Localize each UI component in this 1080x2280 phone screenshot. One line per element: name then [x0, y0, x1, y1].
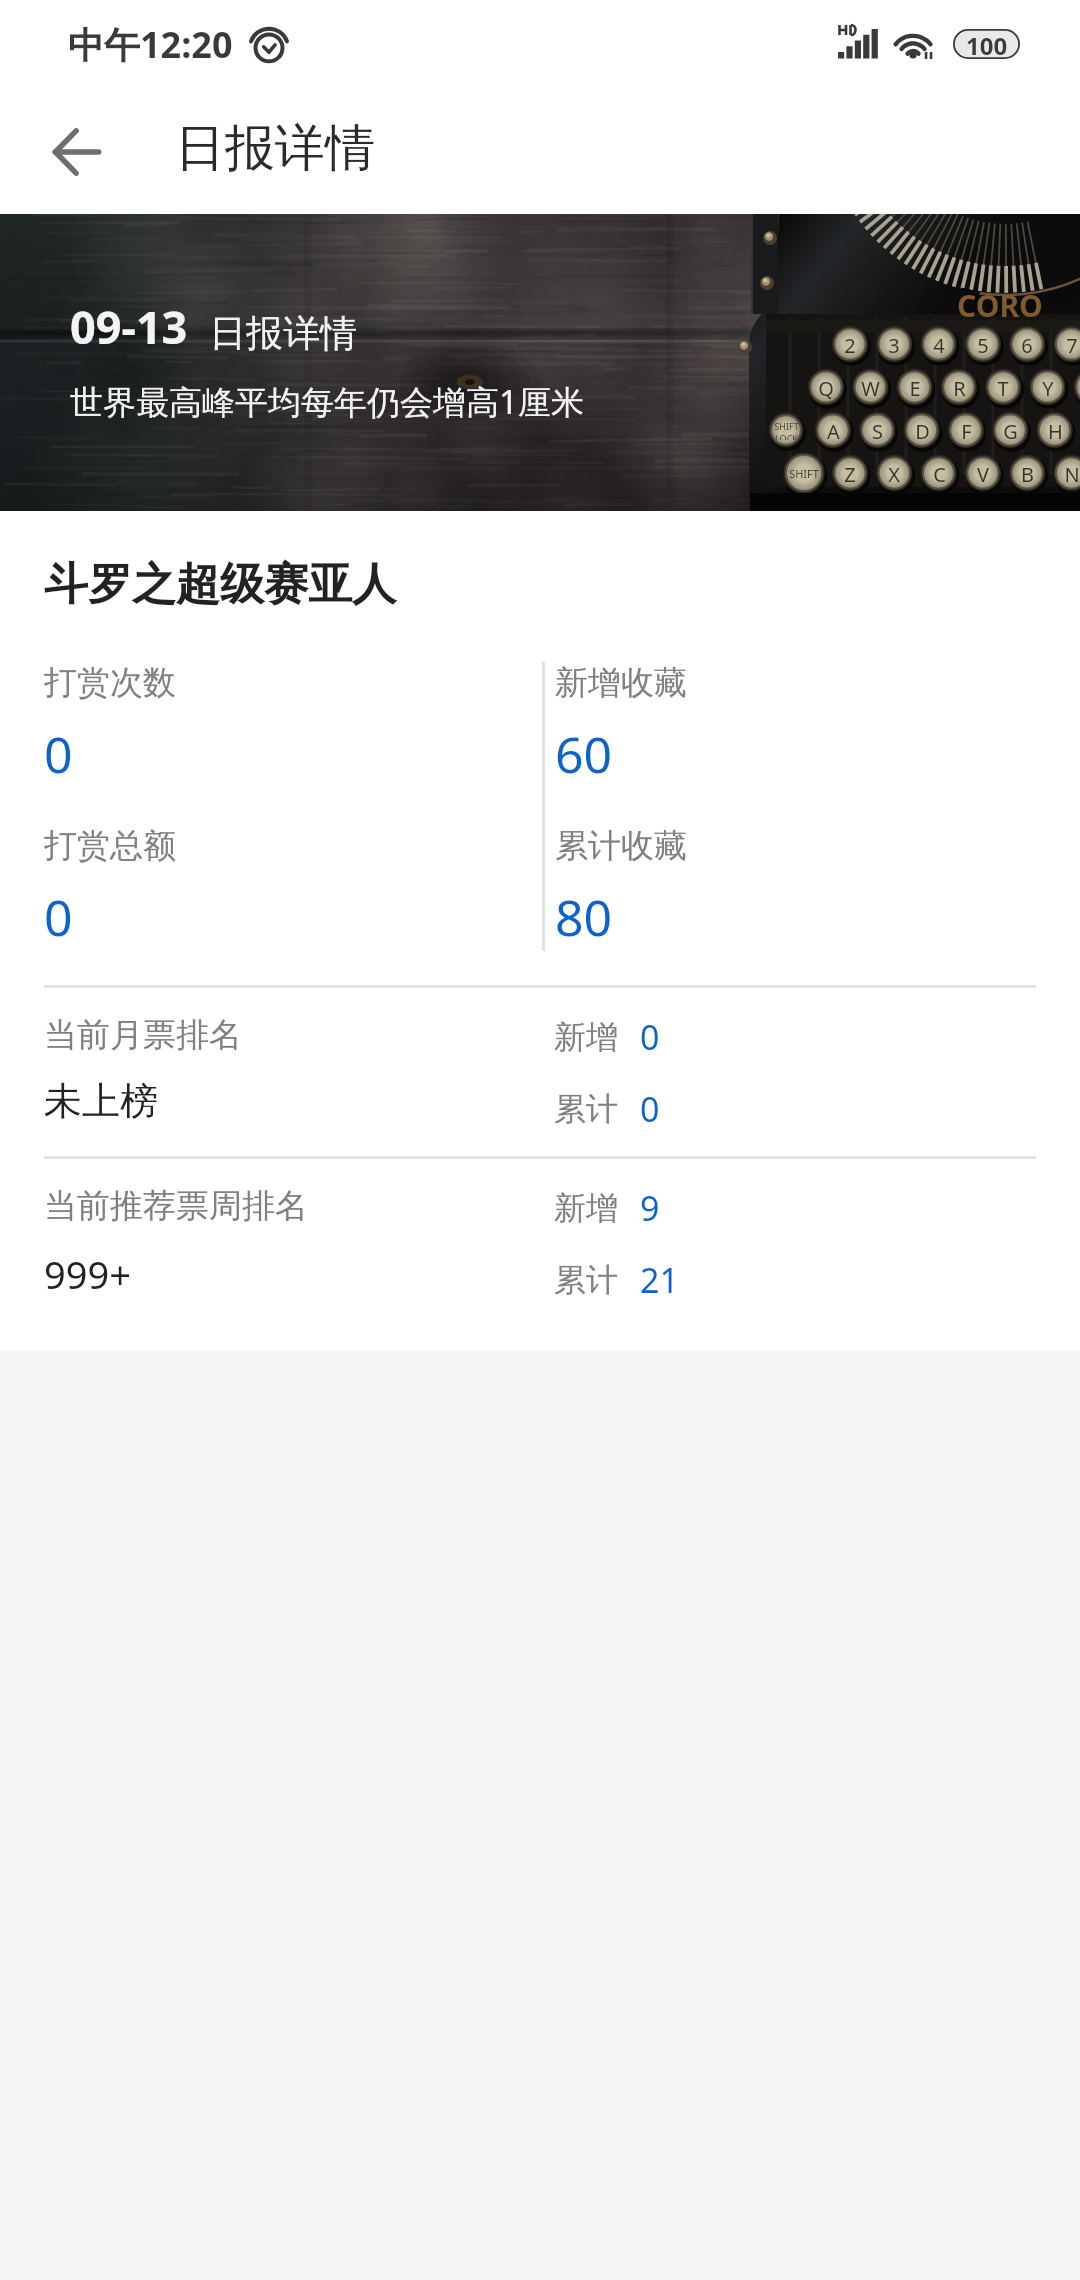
staticText: 3 [888, 332, 900, 356]
staticText: 0 [640, 1086, 660, 1132]
staticText: D [915, 418, 930, 442]
staticText: 6 [1021, 332, 1033, 356]
staticText: 5 [977, 332, 989, 356]
staticText: H [1048, 418, 1063, 442]
staticText: 日报详情 [209, 310, 357, 357]
staticText: 0 [640, 1014, 660, 1060]
staticText: W [861, 375, 880, 399]
button[interactable]: 当前推荐票周排名 [0, 1159, 1080, 1327]
staticText: V [977, 461, 989, 485]
staticText: CORO [957, 285, 1043, 326]
staticText: E [909, 375, 921, 399]
staticText: 未上榜 [44, 1077, 158, 1125]
staticText: 打赏次数 [44, 662, 176, 704]
staticText: N [1064, 461, 1080, 485]
staticText: 0 [44, 720, 73, 788]
staticText: SHIFT [789, 466, 819, 481]
staticText: 7 [1066, 332, 1078, 356]
staticText: 4 [933, 332, 945, 356]
staticText: X [888, 461, 900, 485]
staticText: 打赏总额 [44, 825, 176, 867]
button[interactable]: 返回 [34, 109, 120, 195]
staticText: 100 [966, 29, 1008, 59]
staticText: 中午12:20 [68, 20, 233, 69]
staticText: 80 [555, 883, 613, 951]
staticText: 2 [844, 332, 856, 356]
staticText: 999+ [44, 1248, 131, 1300]
staticText: 斗罗之超级赛亚人 [44, 557, 396, 612]
staticText: B [1021, 461, 1034, 485]
staticText: 60 [555, 720, 613, 788]
staticText: 日报详情 [175, 117, 375, 180]
staticText: F [961, 418, 972, 442]
staticText: 世界最高峰平均每年仍会增高1厘米 [70, 379, 584, 424]
staticText: C [933, 461, 946, 485]
staticText: 9 [640, 1185, 660, 1231]
staticText: A [827, 418, 840, 442]
staticText: Y [1042, 375, 1054, 399]
staticText: 新增收藏 [555, 662, 687, 704]
staticText: 累计 [554, 1260, 618, 1300]
staticText: R [953, 375, 966, 399]
staticText: 新增 [554, 1188, 618, 1228]
staticText: 新增 [554, 1017, 618, 1057]
button[interactable]: 当前月票排名 [0, 988, 1080, 1156]
staticText: Z [844, 461, 856, 485]
staticText: 当前推荐票周排名 [44, 1185, 308, 1227]
staticText: 0 [44, 883, 73, 951]
staticText: 09-13 [70, 296, 188, 357]
staticText: 21 [640, 1257, 679, 1303]
staticText: S [872, 418, 883, 442]
staticText: 当前月票排名 [44, 1014, 242, 1056]
staticText: SHIFT LOCK [774, 420, 799, 440]
staticText: T [997, 375, 1009, 399]
staticText: 累计收藏 [555, 825, 687, 867]
staticText: 累计 [554, 1089, 618, 1129]
staticText: Q [818, 375, 834, 399]
staticText: G [1003, 418, 1018, 442]
